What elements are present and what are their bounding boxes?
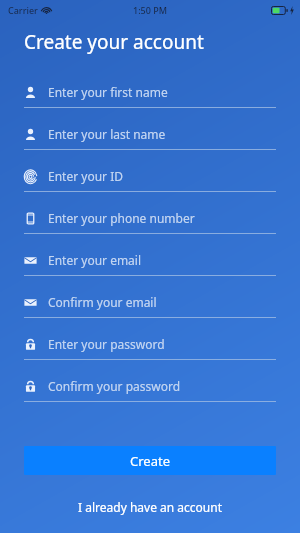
button[interactable]: I already have an account (0, 494, 300, 520)
button[interactable]: Create (24, 446, 276, 475)
other: Enter your phone number (24, 212, 37, 225)
staticText: Enter your first name (48, 84, 168, 100)
button[interactable]: Confirm your password (0, 371, 300, 413)
other: Enter your email (24, 254, 37, 267)
button[interactable]: Enter your phone number (0, 203, 300, 245)
button[interactable]: Confirm your email (0, 287, 300, 329)
staticText: Enter your password (48, 336, 165, 352)
other: Enter your last name (24, 128, 37, 141)
staticText: Enter your last name (48, 126, 166, 142)
button[interactable]: Enter your password (0, 329, 300, 371)
button[interactable]: Enter your email (0, 245, 300, 287)
staticText: I already have an account (78, 499, 222, 515)
other: Confirm your email (24, 296, 37, 309)
staticText: Carrier (8, 4, 38, 16)
button[interactable]: Enter your ID (0, 161, 300, 203)
other: Enter your ID (24, 170, 37, 183)
staticText: Enter your phone number (48, 210, 195, 226)
staticText: Create your account (24, 29, 204, 55)
staticText: Create (130, 452, 170, 470)
button[interactable]: Enter your last name (0, 119, 300, 161)
staticText: Confirm your password (48, 378, 181, 394)
staticText: Enter your ID (48, 168, 123, 184)
other: Enter your first name (24, 86, 37, 99)
staticText: Enter your email (48, 252, 142, 268)
button[interactable]: Enter your first name (0, 77, 300, 119)
staticText: Confirm your email (48, 294, 157, 310)
other: Enter your password (24, 338, 37, 351)
staticText: 1:50 PM (133, 4, 167, 16)
other: Confirm your password (24, 380, 37, 393)
